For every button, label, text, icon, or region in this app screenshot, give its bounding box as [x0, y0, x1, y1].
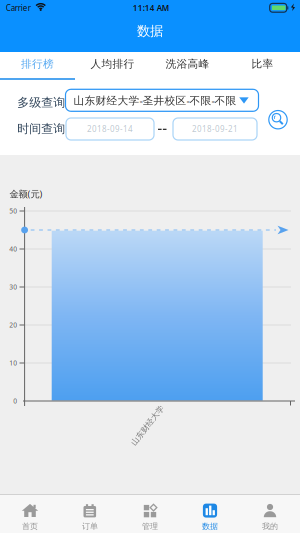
staticText: 20 [9, 321, 17, 329]
staticText: 比率 [251, 57, 273, 70]
staticText: 11:14 AM [133, 3, 169, 13]
staticText: 30 [9, 283, 17, 291]
staticText: 我的 [262, 521, 278, 531]
button[interactable]: 首页 [0, 494, 60, 533]
staticText: 订单 [82, 521, 98, 531]
staticText: 山东财经大学 [123, 421, 171, 430]
staticText: 排行榜 [21, 57, 54, 70]
staticText: 管理 [142, 521, 158, 531]
staticText: 人均排行 [90, 57, 134, 70]
staticText: 多级查询 [17, 95, 65, 110]
staticText: Carrier [6, 3, 31, 13]
button[interactable]: 订单 [60, 494, 120, 533]
staticText: 数据 [202, 521, 218, 531]
button[interactable]: 我的 [240, 494, 300, 533]
button[interactable]: 2018-09-14 [66, 118, 154, 140]
staticText: 数据 [137, 23, 163, 39]
staticText: 2018-09-21 [192, 124, 238, 134]
staticText: 洗浴高峰 [165, 57, 209, 70]
button[interactable]: 人均排行 [75, 52, 150, 80]
staticText: 10 [9, 359, 17, 367]
staticText: 2018-09-14 [87, 124, 133, 134]
staticText: 50 [9, 207, 17, 215]
staticText: 金额(元) [9, 188, 42, 200]
staticText: 40 [9, 245, 17, 253]
button[interactable]: 2018-09-21 [173, 118, 257, 140]
button[interactable]: 洗浴高峰 [150, 52, 225, 80]
button[interactable]: 排行榜 [0, 52, 75, 80]
button[interactable]: 山东财经大学-圣井校区-不限-不限 [65, 89, 258, 111]
button[interactable]: 搜索 [268, 110, 288, 130]
staticText: 时间查询 [17, 121, 65, 136]
button[interactable]: 比率 [225, 52, 300, 80]
staticText: 山东财经大学-圣井校区-不限-不限 [73, 93, 236, 107]
button[interactable]: 数据 [180, 494, 240, 533]
staticText: 0 [13, 397, 17, 405]
staticText: 首页 [22, 521, 38, 531]
button[interactable]: 管理 [120, 494, 180, 533]
